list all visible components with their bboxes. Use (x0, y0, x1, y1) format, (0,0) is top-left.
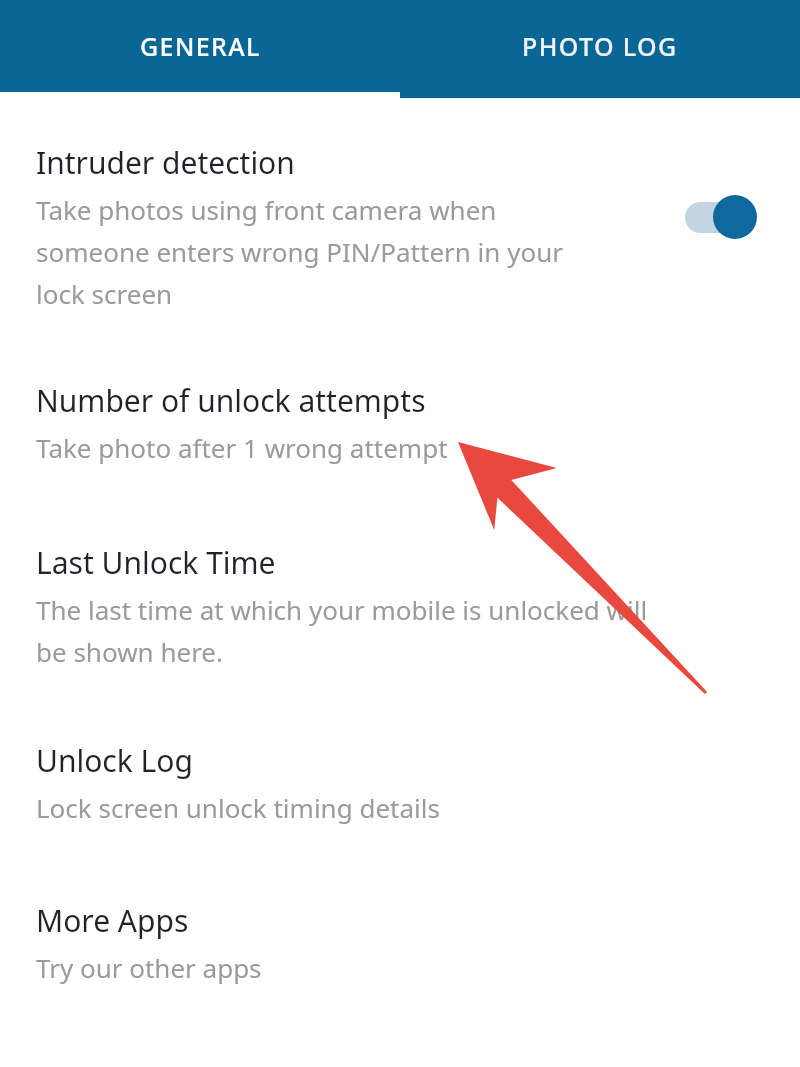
staticText: Unlock Log (36, 740, 193, 781)
staticText: The last time at which your mobile is un… (36, 592, 648, 627)
staticText: lock screen (36, 276, 173, 311)
button[interactable]: Toggle intruder detection (672, 187, 778, 247)
staticText: be shown here. (36, 634, 223, 669)
staticText: More Apps (36, 900, 189, 941)
staticText: PHOTO LOG (522, 29, 678, 63)
staticText: Lock screen unlock timing details (36, 790, 440, 825)
staticText: Take photos using front camera when (36, 192, 497, 227)
staticText: Number of unlock attempts (36, 380, 426, 421)
button[interactable]: Number of unlock attempts (0, 360, 800, 502)
button[interactable]: Unlock Log (0, 720, 800, 862)
staticText: someone enters wrong PIN/Pattern in your (36, 234, 563, 269)
button[interactable]: Intruder detection (0, 98, 800, 350)
staticText: Try our other apps (36, 950, 262, 985)
staticText: Last Unlock Time (36, 542, 276, 583)
button[interactable]: GENERAL (0, 0, 400, 98)
button[interactable]: More Apps (0, 880, 800, 1022)
staticText: GENERAL (140, 29, 261, 63)
button[interactable]: Last Unlock Time (0, 522, 800, 694)
staticText: Take photo after 1 wrong attempt (36, 430, 448, 465)
button[interactable]: PHOTO LOG (400, 0, 800, 98)
staticText: Intruder detection (36, 142, 295, 183)
